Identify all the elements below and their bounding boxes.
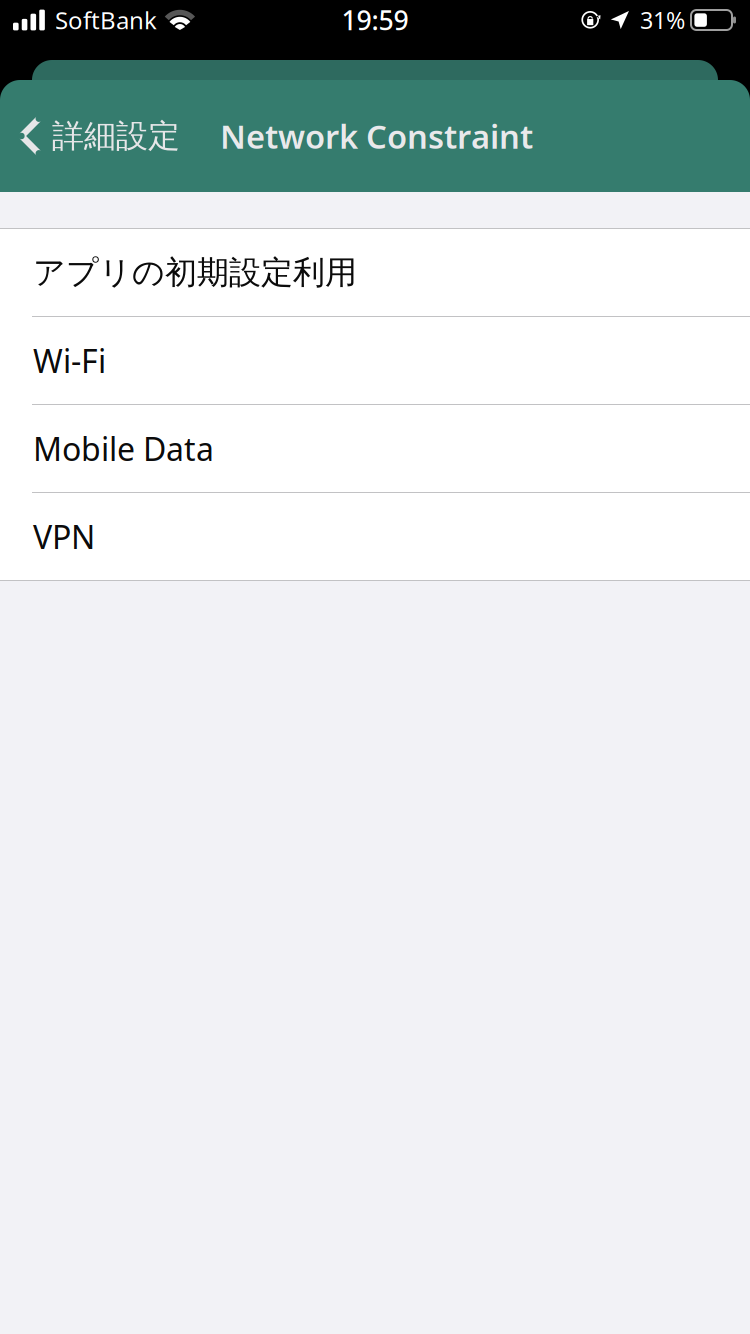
staticText: SoftBank bbox=[55, 4, 157, 36]
button[interactable]: Mobile Data bbox=[0, 405, 750, 492]
button[interactable]: Wi-Fi bbox=[0, 317, 750, 404]
staticText: VPN bbox=[33, 515, 95, 558]
staticText: 19:59 bbox=[341, 2, 408, 38]
staticText: アプリの初期設定利用 bbox=[33, 252, 357, 293]
button[interactable]: 詳細設定 bbox=[0, 80, 192, 192]
button[interactable]: VPN bbox=[0, 493, 750, 580]
staticText: 31% bbox=[640, 4, 685, 36]
staticText: Mobile Data bbox=[33, 427, 214, 470]
staticText: Wi-Fi bbox=[33, 339, 106, 382]
staticText: Network Constraint bbox=[220, 114, 533, 158]
staticText: 詳細設定 bbox=[52, 116, 180, 156]
button[interactable]: アプリの初期設定利用 bbox=[0, 229, 750, 316]
